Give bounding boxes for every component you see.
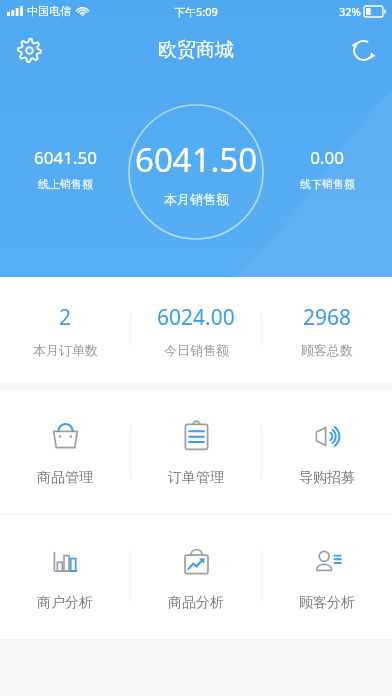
button[interactable]: 顾客分析 — [262, 515, 392, 639]
staticText: 32% — [339, 4, 361, 19]
staticText: 今日销售额 — [164, 342, 229, 358]
staticText: 商户分析 — [37, 594, 93, 612]
button[interactable]: 2968 — [262, 277, 392, 383]
staticText: 0.00 — [310, 146, 344, 169]
button[interactable]: 商品分析 — [131, 515, 261, 639]
staticText: 本月订单数 — [33, 342, 98, 358]
button[interactable]: 导购招募 — [262, 390, 392, 514]
button[interactable]: 2 — [0, 277, 130, 383]
button[interactable]: 6024.00 — [131, 277, 261, 383]
staticText: 订单管理 — [168, 469, 224, 487]
staticText: 线上销售额 — [38, 177, 93, 191]
button[interactable]: 商户分析 — [0, 515, 130, 639]
button[interactable]: 商品管理 — [0, 390, 130, 514]
staticText: 商品管理 — [37, 469, 93, 487]
staticText: 下午5:09 — [174, 4, 218, 19]
staticText: 线下销售额 — [300, 177, 355, 191]
staticText: 导购招募 — [299, 469, 355, 487]
staticText: 2 — [59, 303, 72, 332]
staticText: 6041.50 — [135, 137, 258, 182]
button[interactable]: Settings — [8, 29, 50, 71]
staticText: 6024.00 — [157, 303, 235, 332]
staticText: 顾客分析 — [299, 594, 355, 612]
staticText: 2968 — [303, 303, 352, 332]
button[interactable]: 订单管理 — [131, 390, 261, 514]
staticText: 本月销售额 — [164, 191, 229, 207]
staticText: 商品分析 — [168, 594, 224, 612]
staticText: 顾客总数 — [301, 342, 353, 358]
staticText: 6041.50 — [34, 146, 97, 169]
button[interactable]: Refresh — [342, 29, 384, 71]
staticText: 中国电信 — [27, 4, 71, 18]
staticText: 欧贸商城 — [158, 38, 234, 62]
